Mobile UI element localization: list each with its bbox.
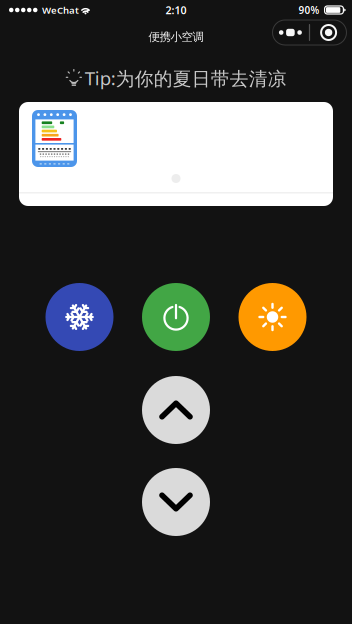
button[interactable]: Decrease	[142, 468, 210, 536]
staticText: Tip:为你的夏日带去清凉	[85, 65, 287, 91]
button[interactable]: Product image	[19, 102, 333, 206]
staticText: 便携小空调	[148, 30, 203, 44]
button[interactable]: Increase	[142, 376, 210, 444]
staticText: WeChat	[42, 3, 79, 17]
button[interactable]: Power	[142, 283, 210, 351]
button[interactable]: Cooling mode	[45, 283, 113, 351]
staticText: 90%	[298, 3, 319, 17]
button[interactable]: Heating mode	[238, 283, 306, 351]
button[interactable]: More options	[272, 19, 347, 45]
staticText: 2:10	[165, 3, 186, 17]
